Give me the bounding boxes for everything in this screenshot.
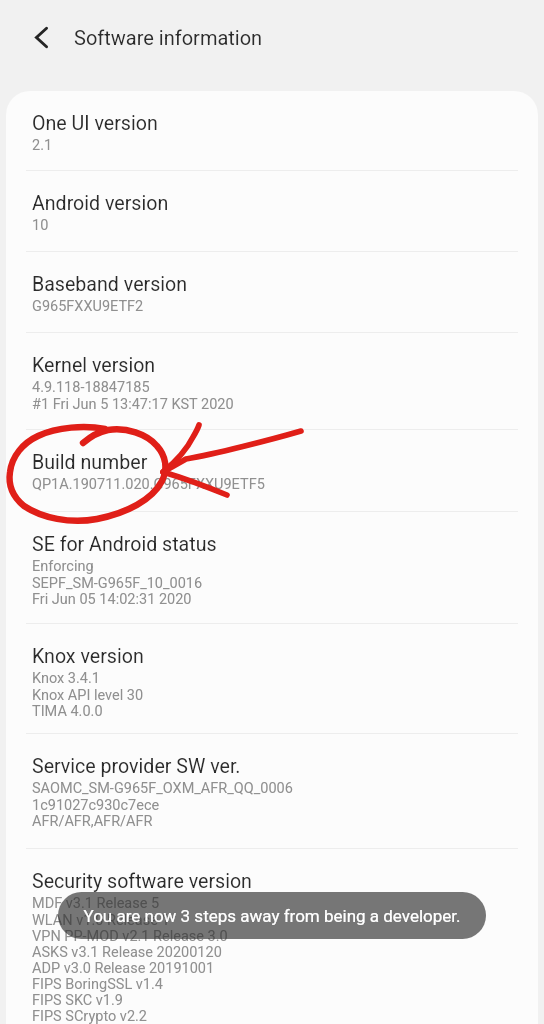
button[interactable]: Security software version — [6, 849, 538, 1024]
staticText: Baseband version — [32, 273, 188, 296]
staticText: One UI version — [32, 112, 158, 135]
staticText: You are now 3 steps away from being a de… — [83, 906, 461, 926]
staticText: SAOMC_SM-G965F_OXM_AFR_QQ_0006 1c91027c9… — [32, 780, 293, 829]
button[interactable]: Kernel version — [6, 333, 538, 429]
staticText: Service provider SW ver. — [32, 755, 241, 778]
button[interactable]: SE for Android status — [6, 512, 538, 623]
staticText: 10 — [32, 217, 49, 234]
button[interactable]: Back — [17, 13, 66, 62]
staticText: Software information — [74, 26, 263, 49]
staticText: Knox 3.4.1 Knox API level 30 TIMA 4.0.0 — [32, 670, 144, 719]
staticText: SE for Android status — [32, 533, 217, 556]
staticText: Enforcing SEPF_SM-G965F_10_0016 Fri Jun … — [32, 558, 203, 607]
staticText: Security software version — [32, 870, 252, 893]
button[interactable]: Knox version — [6, 624, 538, 733]
button[interactable]: Build number — [6, 430, 538, 511]
staticText: Kernel version — [32, 354, 156, 377]
staticText: 4.9.118-18847185 #1 Fri Jun 5 13:47:17 K… — [32, 379, 234, 412]
button[interactable]: Baseband version — [6, 252, 538, 332]
staticText: G965FXXU9ETF2 — [32, 298, 144, 315]
button[interactable]: Android version — [6, 171, 538, 251]
staticText: 2.1 — [32, 137, 53, 154]
staticText: Build number — [32, 451, 148, 474]
staticText: Knox version — [32, 645, 144, 668]
staticText: MDF v3.1 Release 5 WLAN v1.0 Release 1 V… — [32, 895, 228, 1024]
button[interactable]: One UI version — [6, 91, 538, 170]
staticText: QP1A.190711.020.G965FXXU9ETF5 — [32, 476, 265, 493]
staticText: Android version — [32, 192, 169, 215]
button[interactable]: Service provider SW ver. — [6, 734, 538, 848]
